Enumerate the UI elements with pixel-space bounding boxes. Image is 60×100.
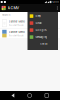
button[interactable]: Keep: [27, 13, 58, 20]
staticText: See all: [40, 42, 48, 45]
button[interactable]: Back: [10, 92, 16, 99]
staticText: Shared with 4 people: [9, 24, 24, 26]
staticText: Google+: [35, 29, 47, 32]
button[interactable]: Home: [26, 92, 33, 99]
button[interactable]: More options: [54, 4, 60, 12]
staticText: Gmail: [35, 22, 42, 25]
button[interactable]: See all: [27, 41, 58, 47]
button[interactable]: Summer Memo: [0, 28, 60, 39]
staticText: 12:00: [52, 0, 59, 3]
staticText: Summer Memo: [9, 31, 25, 33]
staticText: Summer Memo: [9, 20, 25, 23]
staticText: Keep: [35, 15, 41, 18]
button[interactable]: Google+: [27, 27, 58, 34]
staticText: Shared with 4 people: [9, 34, 24, 37]
button[interactable]: Gmail: [27, 20, 58, 27]
staticText: ACMV: [7, 6, 19, 10]
staticText: RECENTS: [2, 14, 10, 16]
button[interactable]: Messaging: [27, 34, 58, 41]
staticText: Messaging: [35, 36, 47, 39]
button[interactable]: Summer Memo: [0, 18, 60, 28]
button[interactable]: Recent apps: [43, 92, 50, 99]
